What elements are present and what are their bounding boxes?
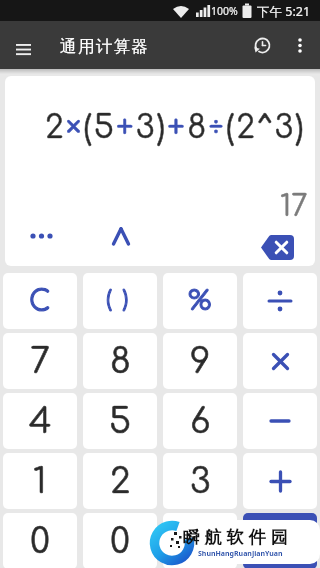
staticText: 17 bbox=[280, 190, 308, 222]
staticText: 7 bbox=[30, 342, 50, 381]
staticText: 瞬航软件园 bbox=[180, 527, 290, 548]
staticText: 0 bbox=[110, 522, 130, 561]
button[interactable]: 9 bbox=[163, 333, 237, 389]
button[interactable]: . bbox=[163, 513, 237, 568]
staticText: 100% bbox=[211, 4, 238, 18]
button[interactable]: 0 bbox=[3, 513, 77, 568]
button[interactable]: () bbox=[83, 273, 157, 329]
button[interactable] bbox=[8, 35, 38, 63]
staticText: 下午 5:21 bbox=[257, 3, 311, 20]
button[interactable] bbox=[243, 453, 317, 509]
staticText: 2×(5+3)+8÷(2^3) bbox=[45, 110, 306, 146]
button[interactable]: 7 bbox=[3, 333, 77, 389]
button[interactable] bbox=[9, 216, 73, 256]
button[interactable] bbox=[243, 273, 317, 329]
staticText: . bbox=[196, 522, 204, 561]
staticText: ShunHangRuanJianYuan bbox=[198, 549, 283, 559]
staticText: 8 bbox=[110, 342, 131, 381]
staticText: . bbox=[196, 522, 204, 561]
staticText: 4 bbox=[29, 402, 52, 441]
button[interactable] bbox=[248, 31, 277, 59]
staticText: () bbox=[106, 287, 140, 312]
staticText: 6 bbox=[190, 402, 211, 441]
staticText: 5 bbox=[109, 402, 131, 441]
button[interactable]: 0 bbox=[83, 513, 157, 568]
staticText: 5 bbox=[109, 402, 131, 441]
staticText: 9 bbox=[190, 342, 211, 381]
staticText: 0 bbox=[30, 522, 50, 561]
button[interactable]: 5 bbox=[83, 393, 157, 449]
staticText: % bbox=[188, 286, 212, 316]
staticText: C bbox=[29, 286, 51, 317]
button[interactable] bbox=[243, 393, 317, 449]
staticText: 2 bbox=[110, 462, 131, 501]
staticText: 6 bbox=[190, 402, 211, 441]
button[interactable] bbox=[243, 513, 317, 568]
staticText: 9 bbox=[190, 342, 211, 381]
staticText: 7 bbox=[30, 342, 50, 381]
staticText: 17 bbox=[280, 190, 308, 222]
button[interactable] bbox=[243, 333, 317, 389]
button[interactable]: 4 bbox=[3, 393, 77, 449]
staticText: () bbox=[106, 287, 140, 312]
button[interactable]: 2 bbox=[83, 453, 157, 509]
staticText: 0 bbox=[30, 522, 50, 561]
staticText: 3 bbox=[190, 462, 211, 501]
button[interactable]: 6 bbox=[163, 393, 237, 449]
staticText: C bbox=[29, 286, 51, 317]
staticText: 通用计算器 bbox=[60, 36, 150, 57]
staticText: 3 bbox=[190, 462, 211, 501]
staticText: % bbox=[188, 286, 212, 316]
button[interactable] bbox=[95, 214, 147, 258]
staticText: 2×(5+3)+8÷(2^3) bbox=[45, 110, 306, 146]
button[interactable]: C bbox=[3, 273, 77, 329]
staticText: 2 bbox=[110, 462, 131, 501]
button[interactable]: 3 bbox=[163, 453, 237, 509]
staticText: 1 bbox=[33, 462, 47, 501]
button[interactable]: 1 bbox=[3, 453, 77, 509]
staticText: 0 bbox=[110, 522, 130, 561]
button[interactable] bbox=[245, 226, 309, 266]
staticText: 8 bbox=[110, 342, 131, 381]
button[interactable]: % bbox=[163, 273, 237, 329]
staticText: 4 bbox=[29, 402, 52, 441]
button[interactable] bbox=[288, 31, 312, 59]
staticText: 1 bbox=[33, 462, 47, 501]
button[interactable]: 8 bbox=[83, 333, 157, 389]
